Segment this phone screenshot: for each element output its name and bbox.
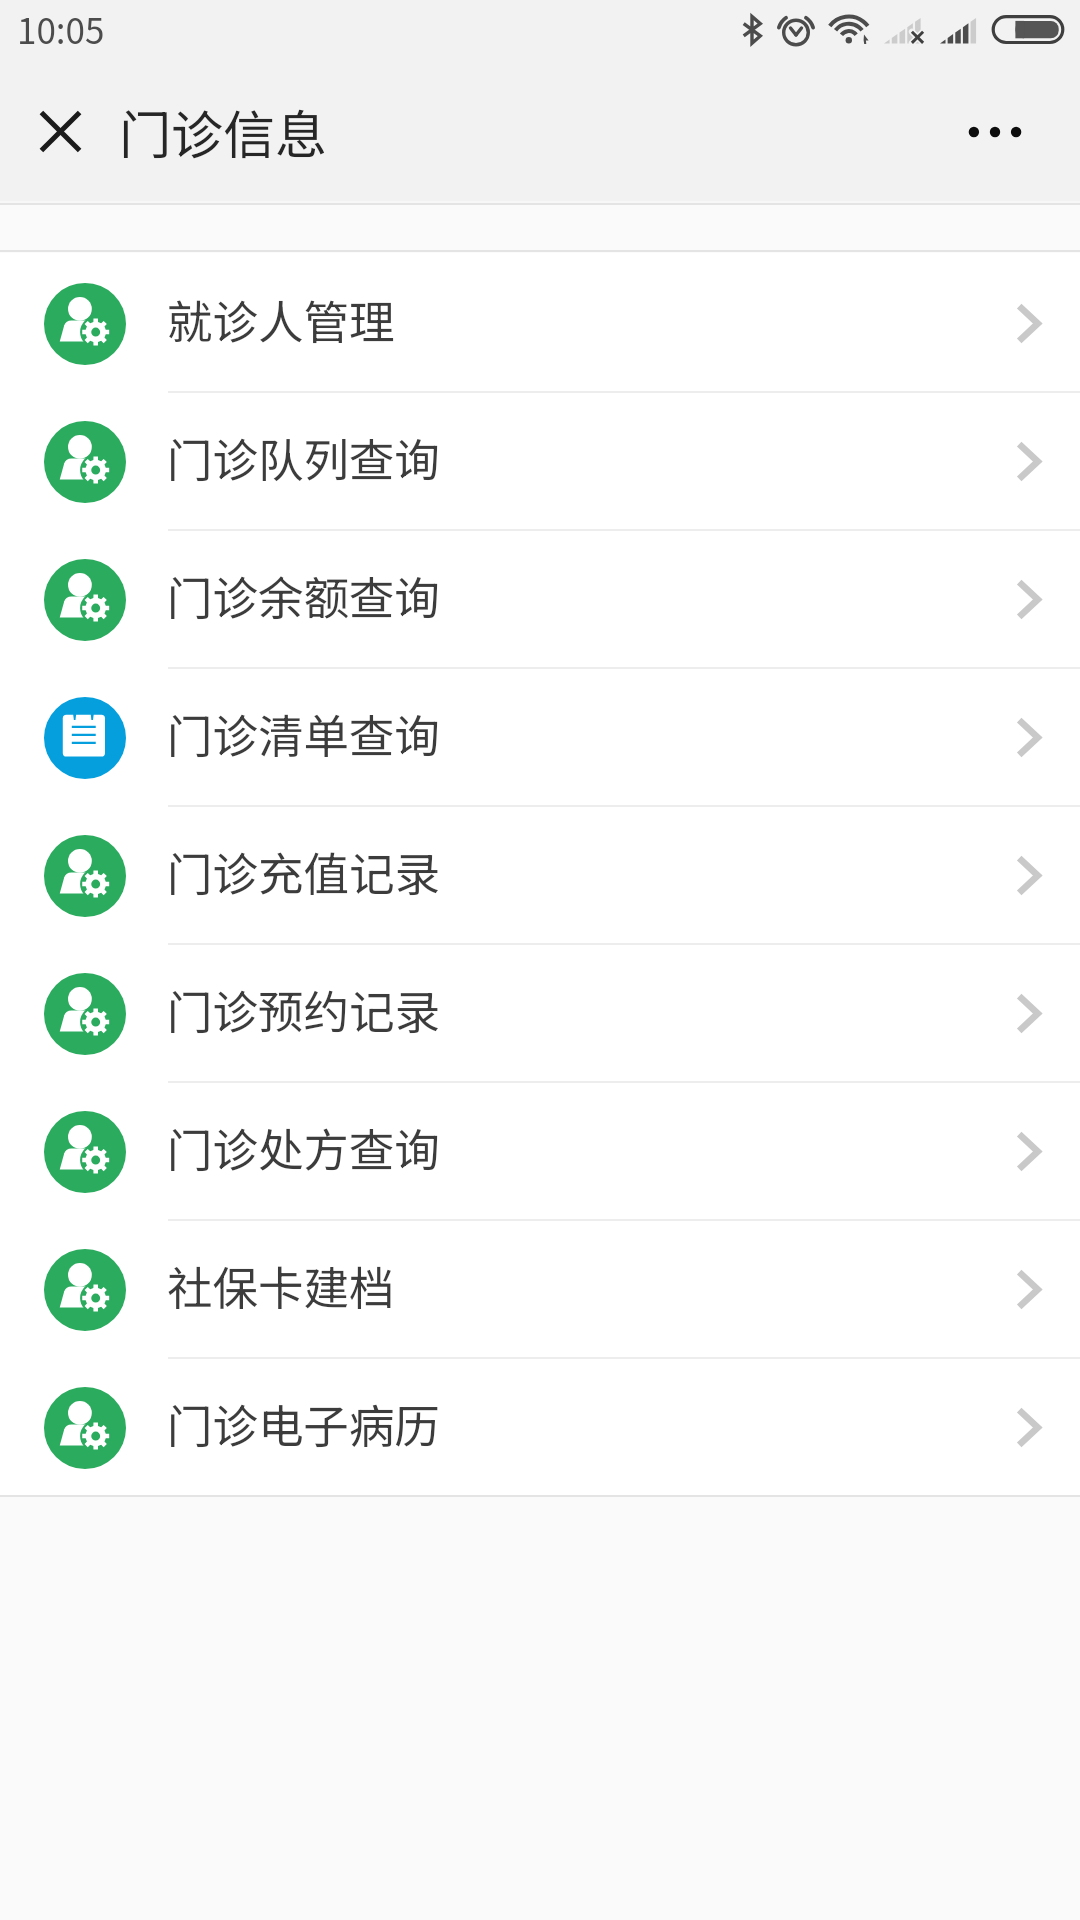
- button[interactable]: 门诊电子病历: [0, 1357, 1080, 1495]
- staticText: 门诊信息: [119, 94, 328, 169]
- button[interactable]: 门诊充值记录: [0, 805, 1080, 943]
- button[interactable]: Close: [0, 62, 118, 201]
- button[interactable]: 社保卡建档: [0, 1219, 1080, 1357]
- button[interactable]: 门诊清单查询: [0, 667, 1080, 805]
- button[interactable]: 门诊预约记录: [0, 943, 1080, 1081]
- button[interactable]: 门诊余额查询: [0, 529, 1080, 667]
- staticText: 门诊余额查询: [167, 562, 441, 628]
- button[interactable]: 就诊人管理: [0, 253, 1080, 391]
- staticText: 门诊充值记录: [167, 838, 441, 904]
- button[interactable]: More options: [910, 62, 1080, 201]
- staticText: 10:05: [17, 3, 105, 54]
- staticText: 门诊清单查询: [167, 700, 441, 766]
- staticText: 门诊电子病历: [167, 1390, 441, 1456]
- staticText: 就诊人管理: [167, 286, 395, 352]
- staticText: 门诊预约记录: [167, 976, 441, 1042]
- staticText: 门诊队列查询: [167, 424, 441, 490]
- button[interactable]: 门诊处方查询: [0, 1081, 1080, 1219]
- staticText: 社保卡建档: [167, 1252, 395, 1318]
- staticText: 门诊处方查询: [167, 1114, 441, 1180]
- button[interactable]: 门诊队列查询: [0, 391, 1080, 529]
